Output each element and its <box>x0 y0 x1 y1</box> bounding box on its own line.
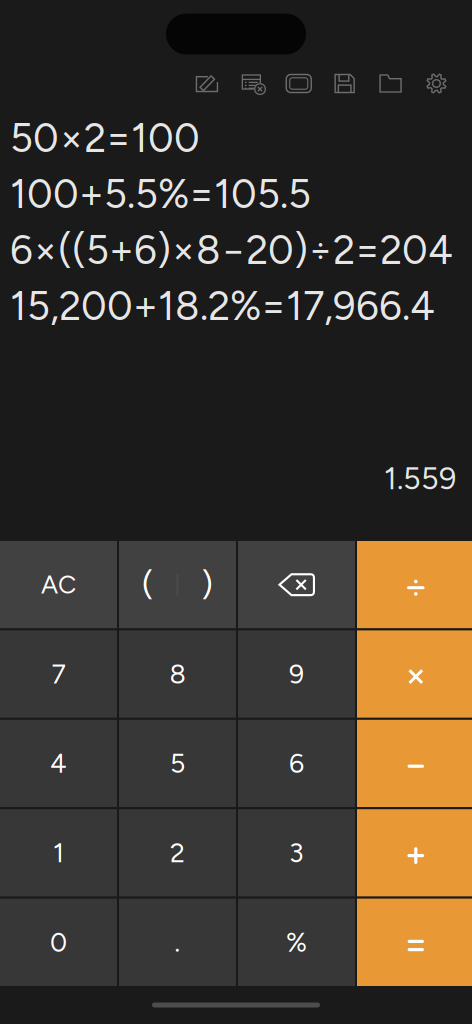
button[interactable]: . <box>119 899 236 986</box>
button[interactable]: 2 <box>119 809 236 897</box>
button[interactable]: Equals <box>357 899 472 986</box>
staticText: 2 <box>170 837 185 869</box>
button[interactable]: Multiply <box>357 630 472 718</box>
button[interactable]: Add <box>357 809 472 897</box>
button[interactable]: AC <box>0 541 117 628</box>
staticText: 6×((5+6)×8−20)÷2=204 <box>10 226 453 274</box>
staticText: 3 <box>289 837 304 869</box>
button[interactable]: Display mode <box>276 68 322 99</box>
staticText: 100+5.5%=105.5 <box>10 170 311 218</box>
button[interactable]: 3 <box>238 809 355 897</box>
staticText: ( <box>142 565 154 605</box>
button[interactable]: Divide <box>357 541 472 628</box>
staticText: 15,200+18.2%=17,966.4 <box>10 282 435 330</box>
staticText: 5 <box>170 747 185 779</box>
button[interactable]: 0 <box>0 899 117 986</box>
button[interactable]: Edit <box>184 68 230 99</box>
staticText: AC <box>41 569 76 600</box>
button[interactable]: 1 <box>0 809 117 897</box>
staticText: % <box>286 926 307 958</box>
staticText: ) <box>201 565 213 605</box>
button[interactable]: 9 <box>238 630 355 718</box>
button[interactable]: Settings <box>413 68 459 99</box>
staticText: 4 <box>50 747 67 779</box>
staticText: 9 <box>289 658 304 690</box>
staticText: 6 <box>289 747 304 779</box>
staticText: 8 <box>169 658 185 690</box>
staticText: . <box>174 926 180 958</box>
button[interactable]: 4 <box>0 720 117 807</box>
button[interactable]: 7 <box>0 630 117 718</box>
staticText: 7 <box>51 658 65 690</box>
button[interactable]: Save <box>322 68 368 99</box>
button[interactable]: 8 <box>119 630 236 718</box>
button[interactable]: Subtract <box>357 720 472 807</box>
button[interactable]: Parentheses <box>119 541 236 628</box>
button[interactable]: Open <box>368 68 413 99</box>
button[interactable]: 6 <box>238 720 355 807</box>
button[interactable]: Clear history <box>230 68 276 99</box>
button[interactable]: 5 <box>119 720 236 807</box>
staticText: 1 <box>53 837 64 869</box>
staticText: 1.559 <box>384 460 456 497</box>
button[interactable]: % <box>238 899 355 986</box>
button[interactable]: Delete <box>238 541 355 628</box>
staticText: 50×2=100 <box>10 114 200 162</box>
staticText: 0 <box>50 926 67 958</box>
